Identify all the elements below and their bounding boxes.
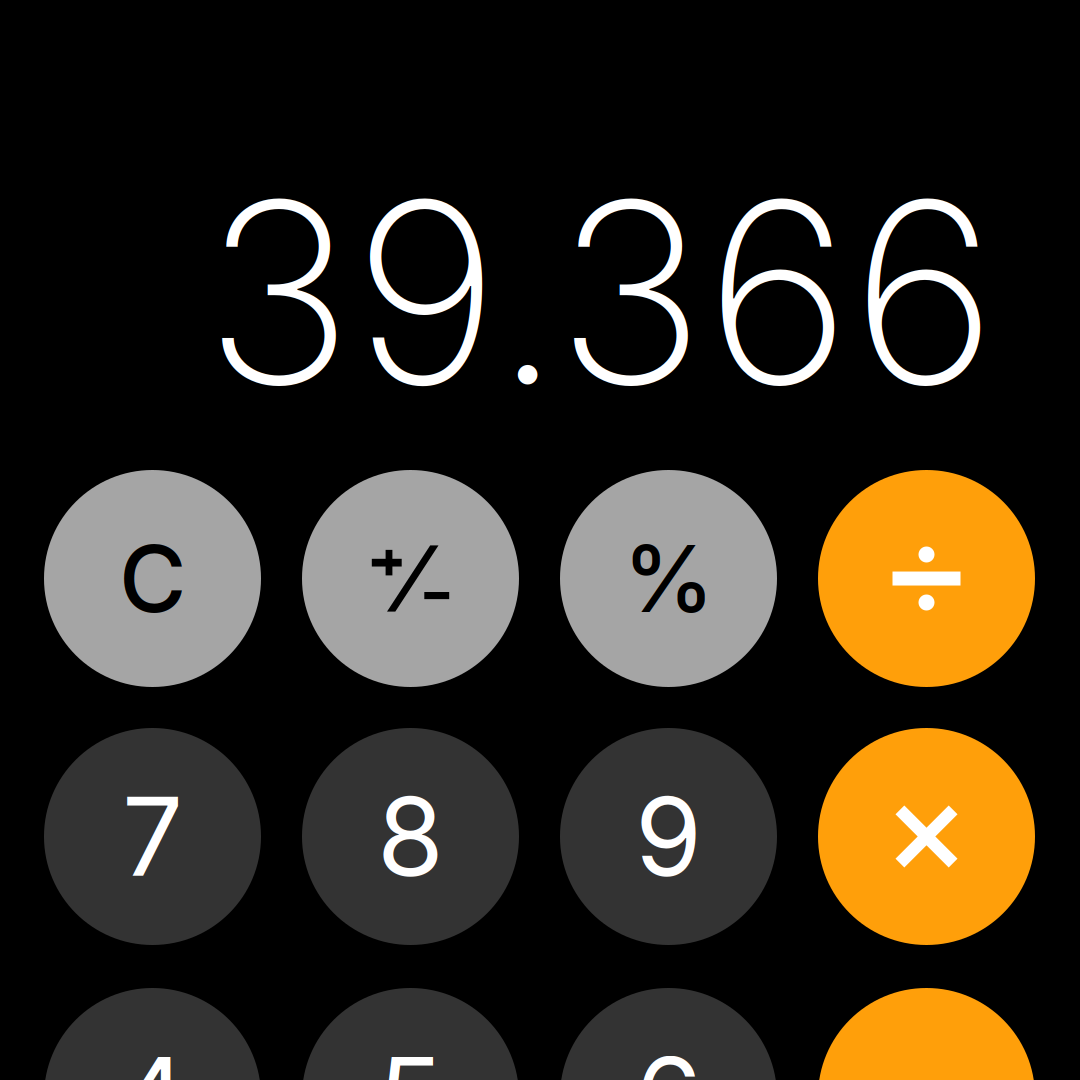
staticText: 39.366 xyxy=(204,141,997,444)
staticText: 6 xyxy=(635,1031,702,1080)
staticText: 7 xyxy=(122,771,183,902)
staticText: C xyxy=(119,523,186,634)
button[interactable] xyxy=(818,470,1035,687)
button[interactable]: 5 xyxy=(302,988,519,1080)
button[interactable]: 8 xyxy=(302,728,519,945)
staticText: 9 xyxy=(635,771,702,902)
staticText: % xyxy=(623,523,714,634)
button[interactable]: 6 xyxy=(560,988,777,1080)
button[interactable] xyxy=(818,988,1035,1080)
staticText: 8 xyxy=(377,771,444,902)
button[interactable]: % xyxy=(560,470,777,687)
button[interactable]: 9 xyxy=(560,728,777,945)
staticText: 5 xyxy=(377,1031,443,1080)
button[interactable] xyxy=(818,728,1035,945)
button[interactable]: 4 xyxy=(44,988,261,1080)
button[interactable]: 7 xyxy=(44,728,261,945)
button[interactable] xyxy=(302,470,519,687)
staticText: 4 xyxy=(117,1031,187,1080)
button[interactable]: C xyxy=(44,470,261,687)
